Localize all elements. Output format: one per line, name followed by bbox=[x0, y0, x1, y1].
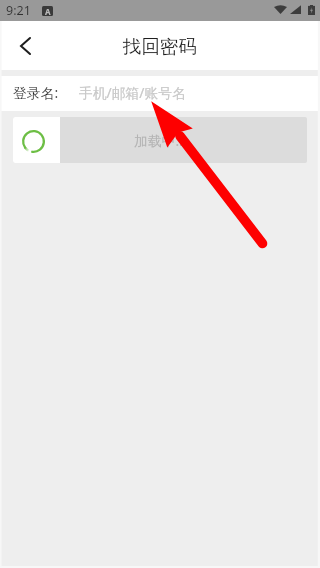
button[interactable]: 加载中... bbox=[13, 117, 307, 163]
staticText: 加载中... bbox=[134, 131, 187, 150]
staticText: 手机/邮箱/账号名 bbox=[79, 83, 186, 102]
staticText: A bbox=[45, 6, 51, 16]
staticText: 找回密码 bbox=[123, 35, 197, 58]
staticText: 9:21 bbox=[6, 2, 31, 19]
staticText: 登录名: bbox=[13, 83, 59, 102]
button[interactable]: Back bbox=[0, 21, 51, 70]
